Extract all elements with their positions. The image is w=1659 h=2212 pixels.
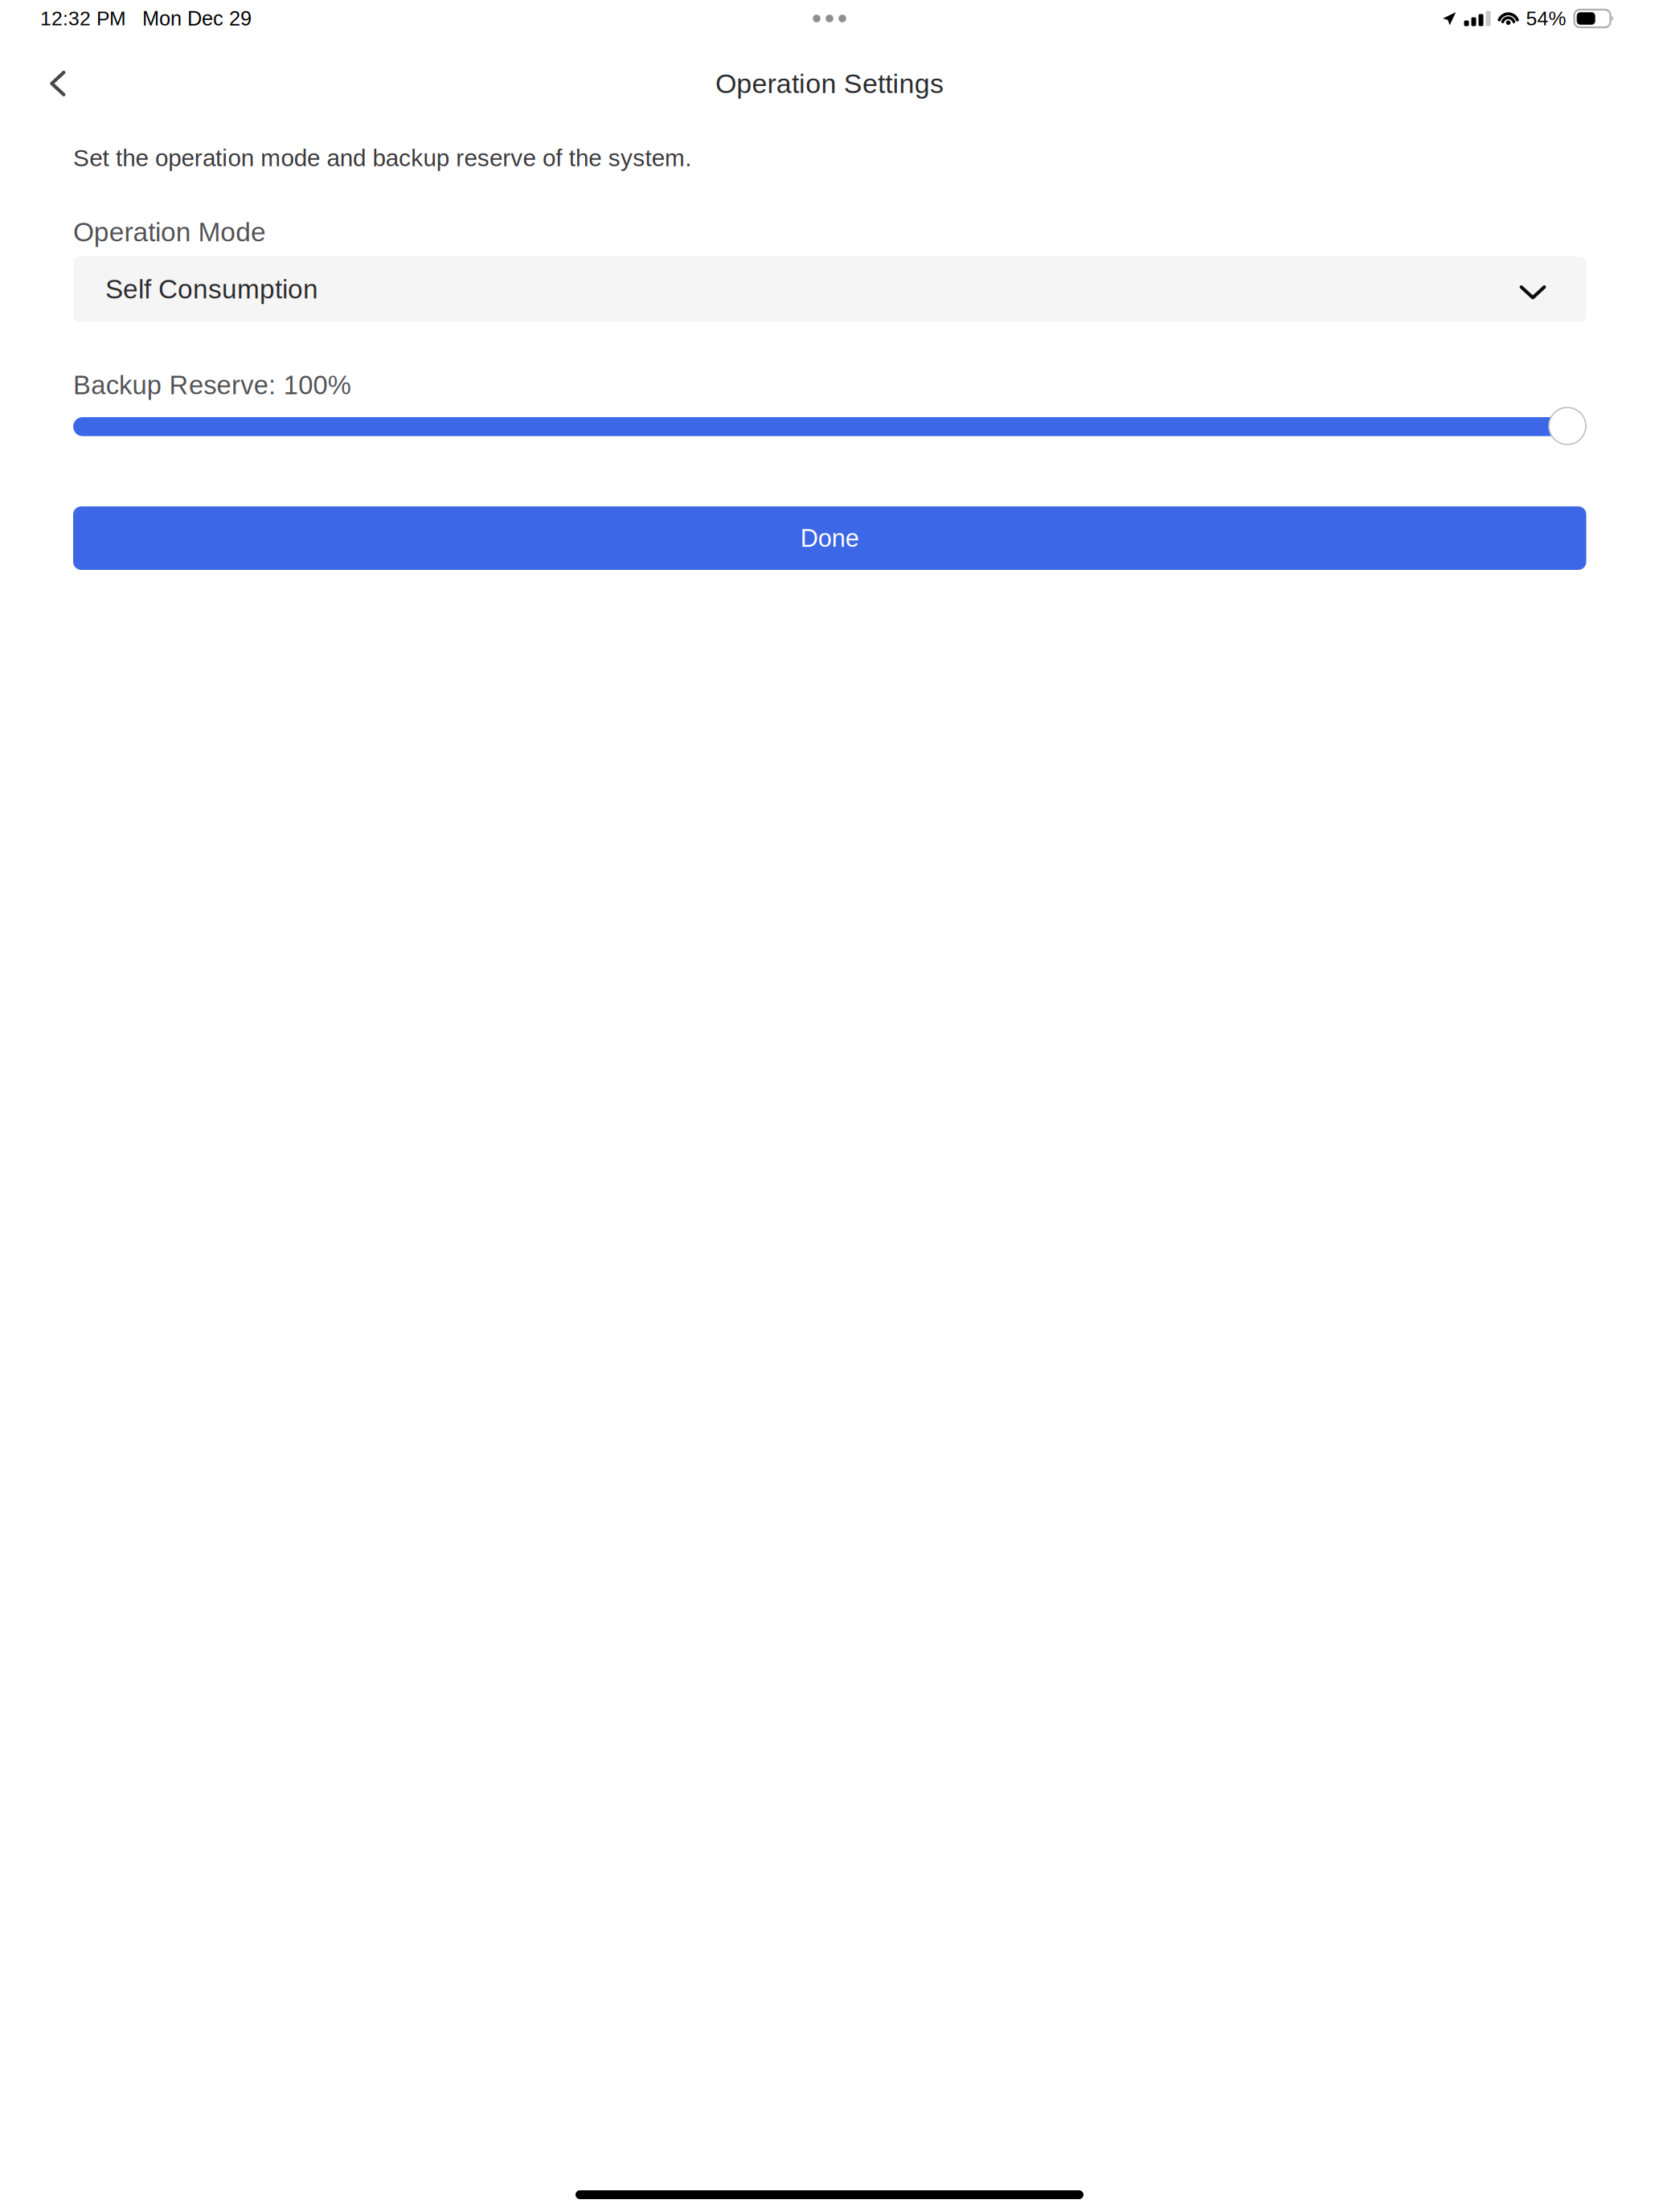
staticText: 12:32 PM	[40, 7, 126, 30]
staticText: Mon Dec 29	[142, 7, 252, 30]
button[interactable]: Back	[35, 61, 80, 106]
button[interactable]: Done	[73, 506, 1586, 570]
staticText: Self Consumption	[105, 274, 318, 304]
staticText: Done	[800, 524, 859, 552]
staticText: 54%	[1526, 7, 1566, 30]
staticText: Operation Settings	[715, 68, 944, 99]
button[interactable]: Self Consumption	[73, 256, 1586, 322]
staticText: Backup Reserve: 100%	[73, 371, 351, 400]
staticText: Operation Mode	[73, 217, 266, 247]
staticText: Set the operation mode and backup reserv…	[73, 145, 691, 171]
